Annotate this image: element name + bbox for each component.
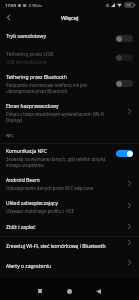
button[interactable]: Tethering przez USB xyxy=(0,46,139,69)
button[interactable]: Back xyxy=(0,9,17,26)
staticText: Komunikacja NFC xyxy=(6,148,48,155)
staticText: Udostępnianie danych przez NFC włączone xyxy=(6,185,94,191)
button[interactable]: Back xyxy=(88,281,108,300)
staticText: Tethering przez Bluetooth xyxy=(6,74,67,81)
staticText: Android Beam xyxy=(6,177,40,184)
button[interactable]: Switch off xyxy=(116,54,133,61)
staticText: Zezwalaj na wymianę danych, gdy telefon … xyxy=(6,156,106,168)
button[interactable]: Alerty o zagrożeniu xyxy=(0,255,139,278)
button[interactable]: Switch off xyxy=(116,35,133,42)
staticText: Więcej xyxy=(61,14,79,22)
staticText: Układ zabezpieczający xyxy=(6,200,58,207)
button[interactable]: Komunikacja NFC xyxy=(0,144,139,172)
button[interactable]: Zbliż i zapłać xyxy=(0,218,139,236)
staticText: Alerty o zagrożeniu xyxy=(6,263,52,270)
button[interactable]: Tryb samolotowy xyxy=(0,26,139,46)
button[interactable]: Tethering przez Bluetooth xyxy=(0,69,139,98)
button[interactable]: Recent apps xyxy=(30,281,50,300)
staticText: USB nie podłączone xyxy=(6,59,47,65)
staticText: Połączenie internetowe telefonu nie jest… xyxy=(6,82,88,94)
staticText: Zbliż i zapłać xyxy=(6,224,36,231)
button[interactable]: Switch on xyxy=(116,150,133,157)
button[interactable]: Układ zabezpieczający xyxy=(0,195,139,218)
staticText: 17:59 xyxy=(5,2,16,8)
staticText: Ekran bezprzewodowy xyxy=(6,103,59,110)
staticText: 0.96b/s xyxy=(29,3,43,8)
button[interactable]: Zresetuj Wi-Fi, sieć komórkową i Bluetoo… xyxy=(0,237,139,255)
staticText: Tethering przez USB xyxy=(6,51,54,58)
staticText: Używasz mobilnego profilu z HCE xyxy=(6,208,74,214)
staticText: Zresetuj Wi-Fi, sieć komórkową i Bluetoo… xyxy=(6,243,106,250)
staticText: NFC xyxy=(6,133,14,138)
button[interactable]: Switch off xyxy=(116,80,133,87)
button[interactable]: Home xyxy=(59,281,79,300)
staticText: Połącz z bezprzewodowym wyświetlaczem (W… xyxy=(6,111,105,123)
button[interactable]: Android Beam xyxy=(0,172,139,195)
staticText: Tryb samolotowy xyxy=(6,33,46,40)
button[interactable]: Ekran bezprzewodowy xyxy=(0,98,139,127)
